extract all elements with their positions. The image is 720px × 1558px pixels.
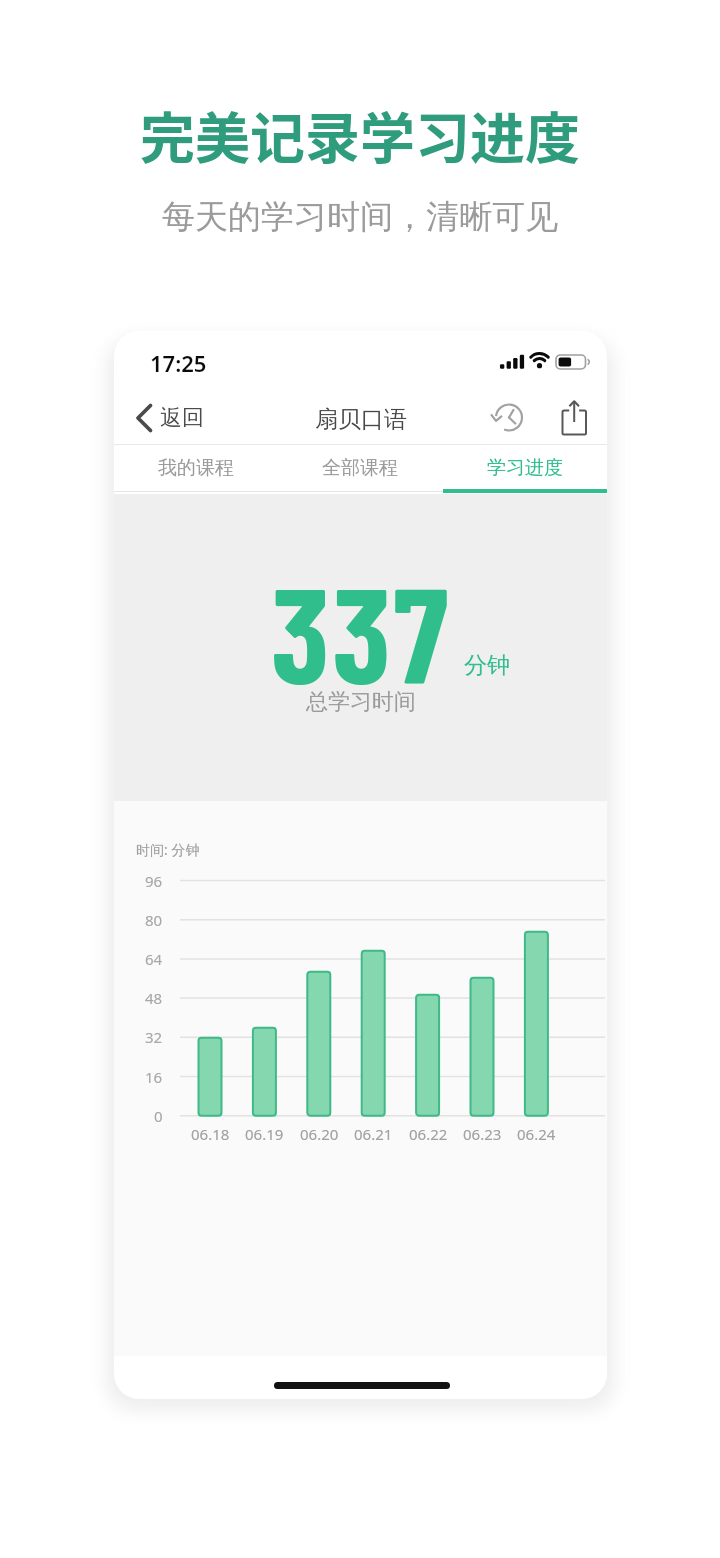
staticText: 学习进度 [487,456,563,480]
staticText: 每天的学习时间，清晰可见 [162,196,558,238]
staticText: 06.22 [409,1124,448,1144]
staticText: 06.20 [300,1124,339,1144]
staticText: 分钟 [464,651,510,679]
button[interactable]: 我的课程 [114,445,278,491]
staticText: 时间: 分钟 [136,840,200,859]
staticText: 总学习时间 [306,688,416,716]
staticText: 16 [145,1067,163,1087]
staticText: 337 [271,550,451,700]
button[interactable]: 返回 [128,395,224,441]
button[interactable] [491,401,527,437]
staticText: 48 [145,988,163,1008]
button[interactable]: 全部课程 [278,445,442,491]
staticText: 06.24 [517,1124,556,1144]
button[interactable] [554,395,596,439]
staticText: 80 [145,910,163,930]
staticText: 96 [145,871,163,891]
staticText: 06.21 [354,1124,393,1144]
button[interactable]: 学习进度 [443,445,607,491]
staticText: 64 [145,949,163,969]
staticText: 17:25 [150,348,207,375]
staticText: 06.18 [191,1124,230,1144]
staticText: 我的课程 [158,456,234,480]
staticText: 0 [154,1106,163,1126]
staticText: 06.23 [463,1124,502,1144]
staticText: 全部课程 [322,456,398,480]
staticText: 返回 [160,404,204,432]
staticText: 32 [145,1027,163,1047]
staticText: 扇贝口语 [315,405,407,433]
staticText: 06.19 [245,1124,284,1144]
staticText: 完美记录学习进度 [140,94,581,174]
